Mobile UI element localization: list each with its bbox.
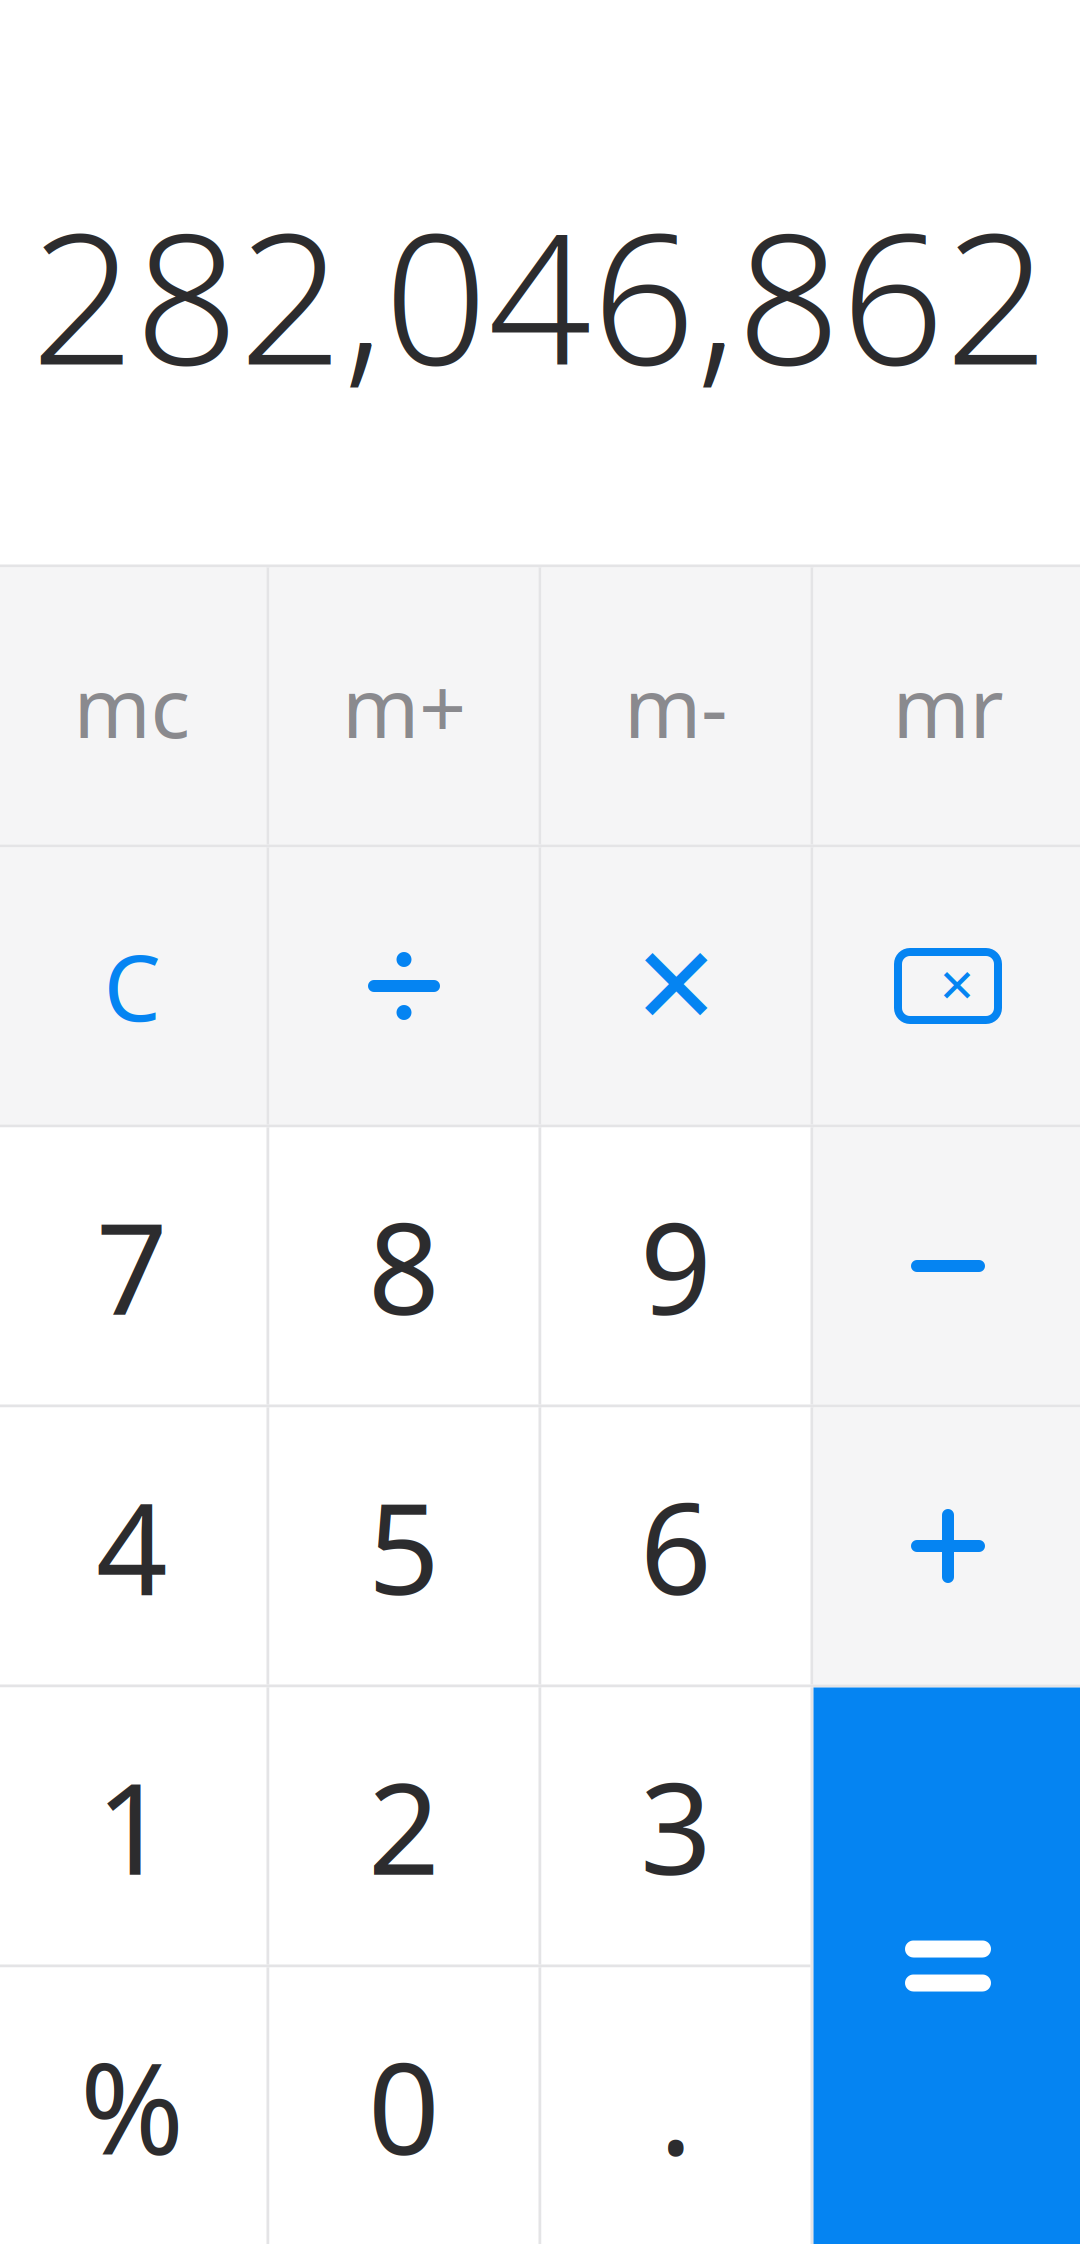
button[interactable]: Equals [813,1687,1080,2244]
button[interactable]: 7 [0,1127,266,1404]
button[interactable]: Plus [813,1407,1080,1684]
staticText: 282,046,862 [31,174,1049,414]
staticText: m- [624,651,728,761]
button[interactable]: Divide [269,847,538,1124]
button[interactable]: 6 [541,1407,810,1684]
staticText: 6 [640,1463,712,1629]
button[interactable]: mr [813,567,1080,844]
staticText: ✕ [631,925,720,1047]
button[interactable]: 4 [0,1407,266,1684]
staticText: mc [73,651,190,761]
staticText: 1 [96,1743,168,1909]
button[interactable]: % [0,1967,266,2244]
staticText: mr [892,651,1003,761]
button[interactable]: m+ [269,567,538,844]
button[interactable]: . [541,1967,810,2244]
staticText: % [80,2023,184,2189]
button[interactable]: Multiply [541,847,810,1124]
button[interactable]: 9 [541,1127,810,1404]
staticText: C [103,926,160,1046]
staticText: 4 [96,1463,168,1629]
staticText: . [659,2023,693,2189]
staticText: 0 [368,2023,440,2189]
staticText: 3 [640,1743,712,1909]
staticText: 9 [640,1183,712,1349]
button[interactable]: 1 [0,1687,266,1964]
staticText: 2 [368,1743,440,1909]
button[interactable]: mc [0,567,266,844]
button[interactable]: Minus [813,1127,1080,1404]
staticText: m+ [342,651,466,761]
button[interactable]: 0 [269,1967,538,2244]
staticText: 8 [368,1183,440,1349]
button[interactable]: 3 [541,1687,810,1964]
staticText: 7 [96,1183,168,1349]
button[interactable]: 2 [269,1687,538,1964]
button[interactable]: Clear [0,847,266,1124]
button[interactable]: 5 [269,1407,538,1684]
staticText: 5 [368,1463,440,1629]
staticText: ✕ [938,960,976,1012]
button[interactable]: m- [541,567,810,844]
button[interactable]: Backspace [813,847,1080,1124]
button[interactable]: 8 [269,1127,538,1404]
